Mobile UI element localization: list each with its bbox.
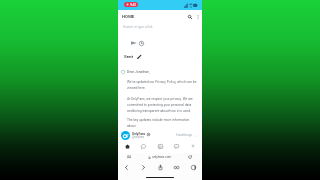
staticText: AA [127, 155, 132, 159]
staticText: The key updates include more information… [127, 118, 190, 128]
button[interactable]: Share [154, 163, 166, 172]
staticText: 9:41 [130, 3, 137, 7]
staticText: At OnlyFans, we respect your privacy. We… [127, 97, 193, 113]
button[interactable]: Collections [154, 141, 166, 151]
button[interactable]: Notifications [137, 141, 149, 151]
staticText: onlyfans.com [152, 155, 172, 159]
staticText: HOME [122, 14, 135, 19]
button[interactable]: Messages [170, 141, 182, 151]
staticText: 5 months ago [176, 134, 192, 137]
button[interactable]: Reload [188, 155, 192, 159]
button[interactable]: Page settings [127, 155, 132, 159]
button[interactable]: Profile [187, 141, 199, 151]
button[interactable]: OnlyFans [121, 130, 198, 141]
staticText: OnlyFans [132, 132, 146, 136]
staticText: @onlyfans [132, 136, 145, 139]
button[interactable]: Home [121, 141, 133, 151]
button[interactable]: More options [193, 12, 202, 21]
staticText: Dear Jonathan, [127, 70, 150, 74]
button[interactable]: Search [185, 12, 194, 21]
staticText: We've updated our Privacy Policy, which … [127, 80, 197, 90]
button[interactable]: Bookmarks [187, 163, 199, 172]
staticText: Sent [124, 54, 134, 59]
button[interactable]: Tabs [170, 163, 182, 172]
button[interactable]: Back [120, 163, 132, 172]
button[interactable]: Forward [137, 163, 149, 172]
staticText: Search or type a link [123, 25, 153, 29]
